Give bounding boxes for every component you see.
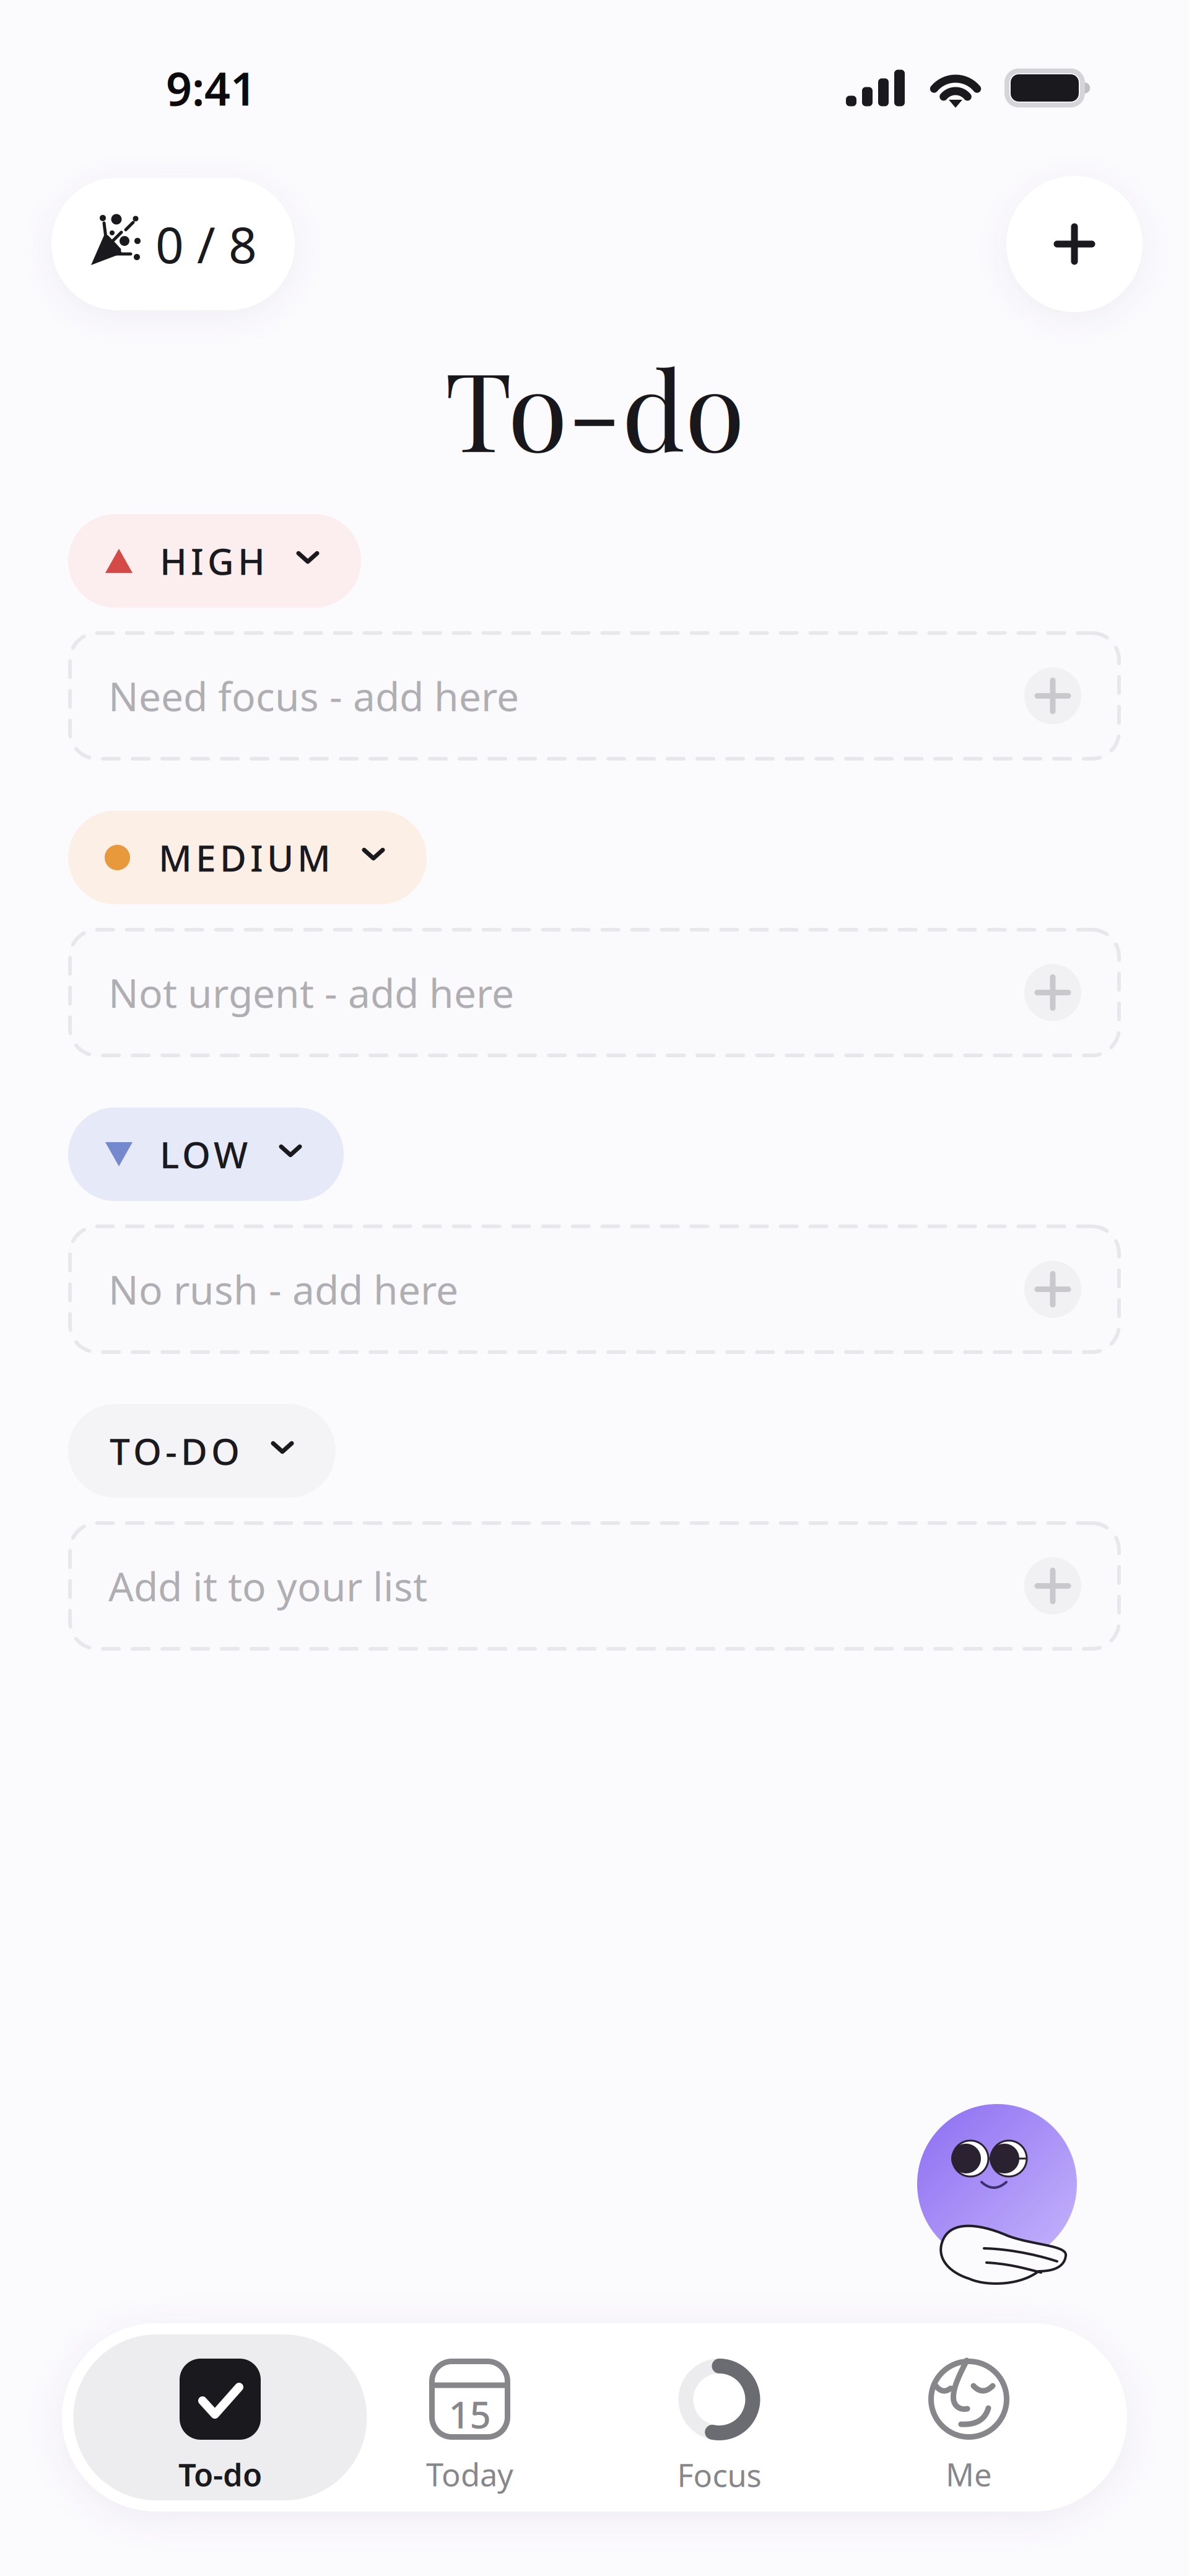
button[interactable]: To-do bbox=[73, 2334, 367, 2500]
staticText: No rush - add here bbox=[108, 1263, 458, 1316]
button[interactable]: MEDIUM bbox=[68, 811, 427, 904]
staticText: Add it to your list bbox=[108, 1560, 427, 1612]
button[interactable]: New task bbox=[1006, 176, 1143, 312]
button[interactable]: Add task bbox=[1024, 1261, 1081, 1318]
button[interactable]: 15 bbox=[345, 2334, 594, 2500]
staticText: Me bbox=[946, 2453, 992, 2495]
staticText: To-do bbox=[445, 334, 744, 479]
button[interactable]: Add task bbox=[1024, 1557, 1081, 1614]
staticText: LOW bbox=[160, 1130, 248, 1178]
staticText: To-do bbox=[178, 2453, 262, 2495]
button[interactable]: HIGH bbox=[68, 514, 361, 608]
button[interactable]: LOW bbox=[68, 1107, 344, 1201]
staticText: Need focus - add here bbox=[108, 670, 519, 722]
button[interactable]: TO-DO bbox=[68, 1404, 336, 1498]
staticText: Focus bbox=[677, 2454, 761, 2496]
button[interactable]: Add task bbox=[1024, 964, 1081, 1021]
button[interactable]: 0 / 8 bbox=[51, 178, 295, 310]
staticText: Today bbox=[426, 2453, 513, 2495]
staticText: TO-DO bbox=[110, 1427, 240, 1475]
staticText: HIGH bbox=[160, 537, 265, 585]
staticText: 15 bbox=[449, 2389, 491, 2439]
button[interactable]: Me bbox=[844, 2334, 1094, 2500]
button[interactable]: Add task bbox=[1024, 667, 1081, 724]
staticText: 9:41 bbox=[166, 58, 256, 118]
staticText: Not urgent - add here bbox=[108, 966, 514, 1019]
staticText: MEDIUM bbox=[159, 833, 331, 882]
button[interactable]: Focus bbox=[594, 2334, 844, 2500]
staticText: 0 / 8 bbox=[155, 211, 257, 277]
